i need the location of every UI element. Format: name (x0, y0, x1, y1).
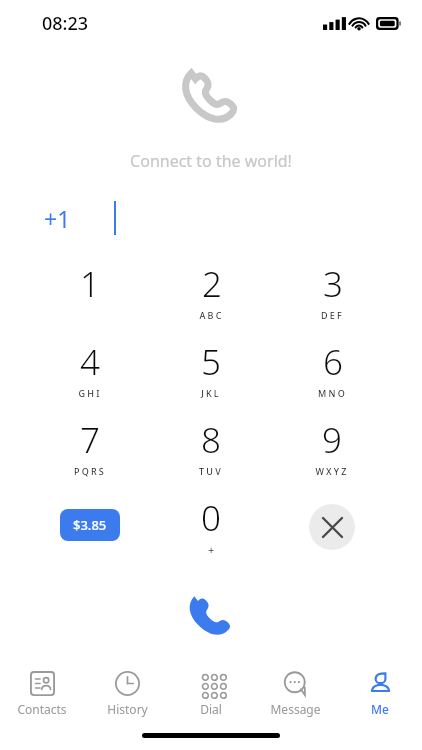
button[interactable]: 1 (45, 260, 135, 338)
staticText: DEF (321, 309, 344, 321)
staticText: + (208, 542, 215, 557)
staticText: 9 (322, 416, 342, 464)
button[interactable]: 5 (166, 338, 256, 416)
staticText: 6 (323, 338, 343, 386)
staticText: PQRS (74, 465, 106, 477)
button[interactable]: Dial (169, 669, 253, 717)
button[interactable]: 0 (166, 494, 256, 572)
staticText: 4 (80, 338, 100, 386)
staticText: JKL (201, 387, 221, 399)
staticText: 0 (201, 494, 221, 542)
button[interactable]: 4 (45, 338, 135, 416)
button[interactable]: Delete (309, 504, 355, 550)
staticText: GHI (78, 387, 102, 399)
staticText: Me (371, 701, 389, 717)
button[interactable]: 6 (287, 338, 377, 416)
button[interactable]: 8 (166, 416, 256, 494)
button[interactable]: 9 (287, 416, 377, 494)
button[interactable]: +1 (0, 198, 422, 238)
staticText: History (107, 701, 148, 717)
staticText: ABC (199, 309, 224, 321)
staticText: 8 (201, 416, 221, 464)
staticText: Connect to the world! (130, 150, 292, 172)
staticText: MNO (318, 387, 347, 399)
button[interactable]: 7 (45, 416, 135, 494)
staticText: TUV (199, 465, 223, 477)
staticText: 08:23 (42, 11, 89, 36)
staticText: +1 (44, 203, 71, 234)
button[interactable]: Contacts (0, 669, 84, 717)
button[interactable]: Call (178, 584, 244, 650)
staticText: WXYZ (315, 465, 349, 477)
button[interactable]: History (85, 669, 169, 717)
staticText: 5 (201, 338, 221, 386)
staticText: 7 (80, 416, 100, 464)
staticText: $3.85 (73, 516, 107, 534)
staticText: 3 (323, 260, 343, 308)
button[interactable]: 2 (166, 260, 256, 338)
staticText: Contacts (17, 701, 67, 717)
button[interactable]: 3 (287, 260, 377, 338)
button[interactable]: Message (253, 669, 337, 717)
staticText: 2 (202, 260, 222, 308)
button[interactable]: Me (338, 669, 422, 717)
staticText: 1 (80, 260, 100, 308)
button[interactable]: $3.85 (60, 509, 120, 541)
staticText: Dial (200, 701, 222, 717)
staticText: Message (270, 701, 321, 717)
